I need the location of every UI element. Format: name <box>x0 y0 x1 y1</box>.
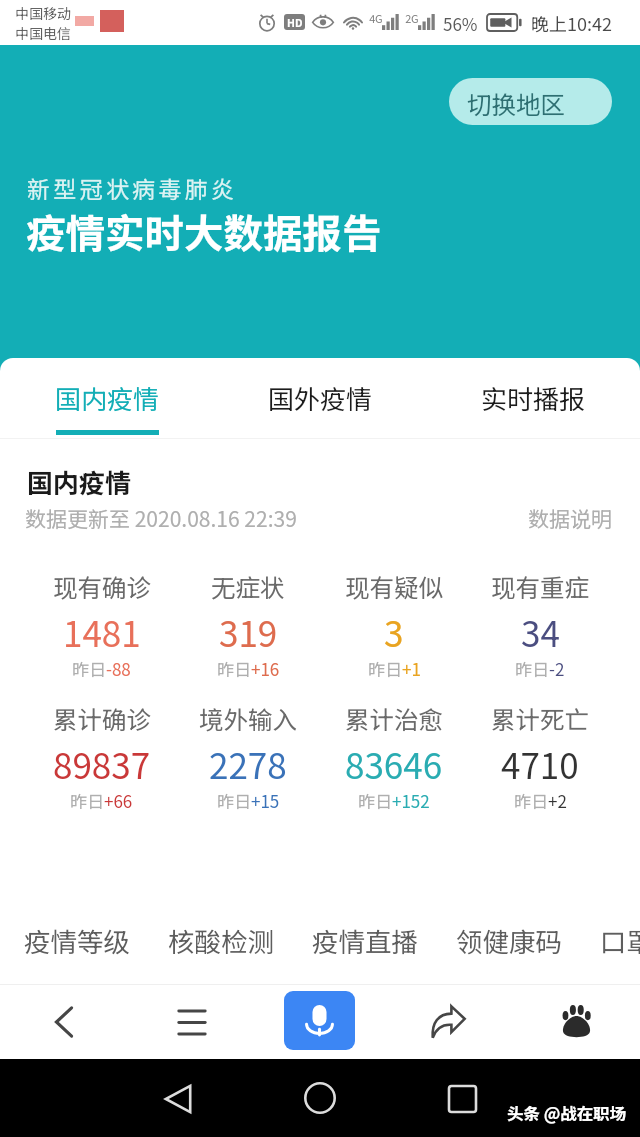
staticText: +2 <box>548 788 567 813</box>
staticText: +15 <box>251 788 280 813</box>
staticText: 现有重症 <box>491 569 589 604</box>
staticText: -88 <box>106 656 131 681</box>
staticText: 昨日 <box>515 656 549 681</box>
button[interactable]: 核酸检测 <box>168 921 274 959</box>
staticText: +1 <box>402 656 421 681</box>
staticText: 昨日 <box>70 788 104 813</box>
staticText: 1481 <box>63 606 141 657</box>
staticText: 累计确诊 <box>53 701 151 736</box>
staticText: HD <box>287 15 303 30</box>
staticText: 疫情实时大数据报告 <box>26 202 382 259</box>
staticText: 现有确诊 <box>53 569 151 604</box>
staticText: 无症状 <box>211 569 285 604</box>
staticText: 数据更新至 2020.08.16 22:39 <box>25 503 297 533</box>
staticText: 数据说明 <box>528 503 612 533</box>
button[interactable]: Voice search <box>284 991 355 1050</box>
staticText: 昨日 <box>368 656 402 681</box>
staticText: 89837 <box>53 738 151 789</box>
staticText: 83646 <box>345 738 443 789</box>
button[interactable]: 现有疑似 <box>321 569 467 679</box>
staticText: 319 <box>219 606 278 657</box>
staticText: 昨日 <box>217 656 251 681</box>
staticText: 累计治愈 <box>345 701 443 736</box>
button[interactable]: 数据说明 <box>528 503 612 533</box>
button[interactable]: 现有确诊 <box>28 569 175 679</box>
button[interactable]: Share <box>384 984 512 1059</box>
button[interactable]: Menu <box>128 984 256 1059</box>
staticText: 国内疫情 <box>27 463 132 501</box>
staticText: 34 <box>521 606 560 657</box>
staticText: 4G <box>369 10 383 26</box>
staticText: 核酸检测 <box>168 921 274 959</box>
button[interactable]: 境外输入 <box>175 701 321 811</box>
button[interactable]: Recents <box>440 1076 485 1121</box>
staticText: 新型冠状病毒肺炎 <box>27 171 238 204</box>
button[interactable]: Baidu <box>512 984 640 1059</box>
button[interactable]: 口罩检测 <box>600 921 640 959</box>
button[interactable]: 疫情直播 <box>312 921 418 959</box>
staticText: 境外输入 <box>199 701 297 736</box>
staticText: 晚上10:42 <box>531 10 612 36</box>
staticText: 累计死亡 <box>491 701 589 736</box>
staticText: 现有疑似 <box>345 569 443 604</box>
staticText: 昨日 <box>217 788 251 813</box>
staticText: +16 <box>251 656 280 681</box>
button[interactable]: 累计治愈 <box>321 701 467 811</box>
button[interactable]: 现有重症 <box>467 569 613 679</box>
staticText: 中国移动 <box>15 3 71 23</box>
staticText: 4710 <box>501 738 579 789</box>
staticText: 实时播报 <box>481 379 586 417</box>
staticText: 口罩检测 <box>600 921 640 959</box>
button[interactable]: 国内疫情 <box>0 362 214 446</box>
staticText: +66 <box>104 788 133 813</box>
staticText: +152 <box>392 788 430 813</box>
button[interactable]: 无症状 <box>175 569 321 679</box>
button[interactable]: 领健康码 <box>456 921 562 959</box>
button[interactable]: 累计死亡 <box>467 701 613 811</box>
staticText: 昨日 <box>514 788 548 813</box>
staticText: 中国电信 <box>15 23 71 43</box>
staticText: 国外疫情 <box>268 379 373 417</box>
button[interactable]: 疫情等级 <box>24 921 130 959</box>
button[interactable]: Back <box>0 984 128 1059</box>
button[interactable]: Back <box>155 1076 200 1121</box>
staticText: 2G <box>405 10 419 26</box>
staticText: 56% <box>443 11 478 36</box>
button[interactable]: 累计确诊 <box>28 701 175 811</box>
staticText: 头条 @战在职场 <box>507 1101 627 1125</box>
staticText: -2 <box>549 656 565 681</box>
staticText: 3 <box>384 606 404 657</box>
button[interactable]: 国外疫情 <box>214 362 427 446</box>
staticText: 昨日 <box>72 656 106 681</box>
staticText: 2278 <box>209 738 287 789</box>
button[interactable]: Home <box>297 1075 342 1120</box>
staticText: 切换地区 <box>467 86 565 121</box>
staticText: 领健康码 <box>456 921 562 959</box>
staticText: 国内疫情 <box>55 379 160 417</box>
staticText: 昨日 <box>358 788 392 813</box>
button[interactable]: 切换地区 <box>449 78 612 125</box>
button[interactable]: 实时播报 <box>427 362 640 446</box>
staticText: 疫情等级 <box>24 921 130 959</box>
staticText: 疫情直播 <box>312 921 418 959</box>
